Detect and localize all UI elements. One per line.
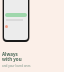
staticText: and your loved ones — [2, 64, 31, 68]
staticText: Always with you — [2, 51, 22, 62]
button[interactable] — [5, 13, 27, 17]
